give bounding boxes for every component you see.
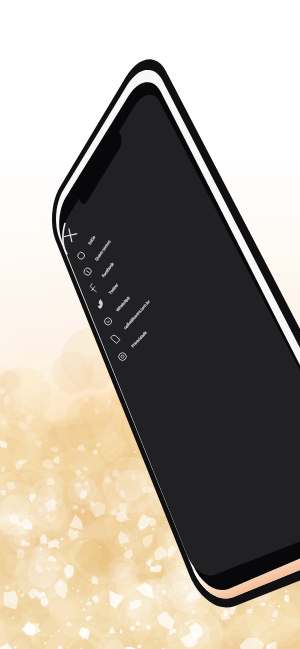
button[interactable]: Menu bbox=[0, 0, 300, 649]
